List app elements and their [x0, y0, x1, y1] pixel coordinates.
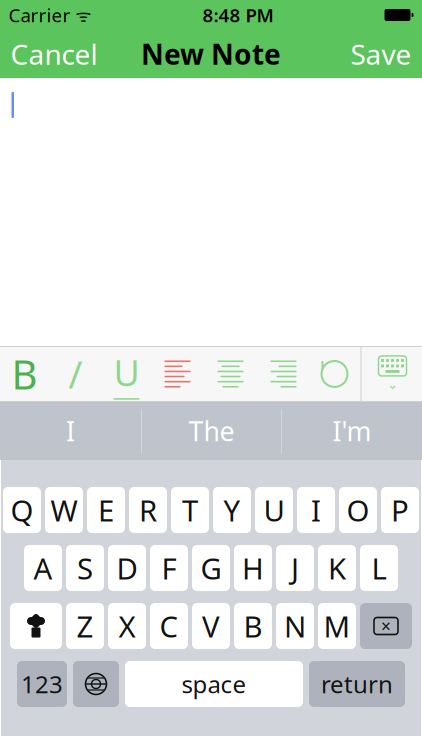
staticText: Y: [223, 490, 240, 529]
staticText: /: [68, 349, 82, 399]
button[interactable]: I'm: [282, 402, 422, 460]
button[interactable]: Z: [66, 603, 104, 649]
button[interactable]: I: [297, 487, 335, 533]
button[interactable]: K: [318, 545, 356, 591]
button[interactable]: Bold: [0, 346, 50, 402]
staticText: I: [311, 490, 321, 529]
button[interactable]: J: [276, 545, 314, 591]
staticText: ×: [381, 614, 391, 637]
staticText: U: [263, 490, 284, 529]
button[interactable]: Italic: [50, 346, 100, 402]
button[interactable]: Shift: [10, 603, 62, 649]
staticText: N: [284, 606, 306, 645]
staticText: 8:48 PM: [202, 3, 273, 27]
staticText: B: [243, 606, 262, 645]
button[interactable]: H: [234, 545, 272, 591]
button[interactable]: The: [142, 402, 281, 460]
staticText: F: [161, 548, 176, 587]
button[interactable]: S: [66, 545, 104, 591]
button[interactable]: Y: [213, 487, 251, 533]
button[interactable]: Delete: [360, 603, 412, 649]
staticText: D: [116, 548, 137, 587]
staticText: The: [188, 413, 234, 449]
staticText: Cancel: [10, 35, 97, 73]
staticText: Z: [76, 606, 93, 645]
button[interactable]: U: [255, 487, 293, 533]
button[interactable]: space: [125, 661, 303, 707]
staticText: Q: [10, 490, 33, 529]
staticText: H: [242, 548, 264, 587]
staticText: J: [291, 548, 299, 587]
button[interactable]: Align right: [256, 346, 308, 402]
staticText: 123: [21, 668, 63, 700]
button[interactable]: F: [150, 545, 188, 591]
button[interactable]: Cancel: [0, 30, 109, 78]
button[interactable]: Align center: [204, 346, 256, 402]
staticText: I'm: [332, 413, 371, 449]
button[interactable]: M: [318, 603, 356, 649]
staticText: V: [202, 606, 220, 645]
button[interactable]: Underline: [100, 346, 152, 402]
button[interactable]: G: [192, 545, 230, 591]
staticText: P: [391, 490, 409, 529]
staticText: ᯤ: [70, 3, 91, 26]
staticText: space: [181, 668, 246, 700]
staticText: New Note: [141, 35, 281, 73]
staticText: L: [371, 548, 386, 587]
staticText: T: [182, 490, 198, 529]
staticText: O: [346, 490, 369, 529]
button[interactable]: P: [381, 487, 419, 533]
staticText: B: [11, 347, 37, 400]
button[interactable]: C: [150, 603, 188, 649]
button[interactable]: Next keyboard: [73, 661, 119, 707]
button[interactable]: return: [309, 661, 405, 707]
button[interactable]: A: [24, 545, 62, 591]
staticText: Save: [350, 35, 411, 73]
staticText: R: [139, 490, 157, 529]
button[interactable]: 123: [17, 661, 67, 707]
button[interactable]: L: [360, 545, 398, 591]
staticText: W: [50, 490, 77, 529]
button[interactable]: Q: [3, 487, 41, 533]
staticText: U: [113, 348, 139, 396]
button[interactable]: W: [45, 487, 83, 533]
staticText: C: [159, 606, 178, 645]
button[interactable]: I: [0, 402, 141, 460]
button[interactable]: B: [234, 603, 272, 649]
staticText: return: [321, 668, 393, 700]
staticText: S: [77, 548, 93, 587]
staticText: K: [328, 548, 346, 587]
staticText: E: [98, 490, 114, 529]
staticText: M: [323, 606, 350, 645]
button[interactable]: T: [171, 487, 209, 533]
staticText: Carrier: [8, 3, 70, 27]
button[interactable]: O: [339, 487, 377, 533]
button[interactable]: E: [87, 487, 125, 533]
button[interactable]: Save: [338, 30, 422, 78]
staticText: I: [66, 413, 75, 449]
staticText: X: [118, 606, 135, 645]
button[interactable]: Undo: [308, 346, 360, 402]
button[interactable]: D: [108, 545, 146, 591]
staticText: G: [200, 548, 221, 587]
button[interactable]: V: [192, 603, 230, 649]
button[interactable]: N: [276, 603, 314, 649]
staticText: ⌄: [387, 377, 398, 392]
button[interactable]: R: [129, 487, 167, 533]
button[interactable]: X: [108, 603, 146, 649]
button[interactable]: Align left: [152, 346, 204, 402]
button[interactable]: Hide keyboard: [361, 346, 422, 402]
staticText: A: [33, 548, 52, 587]
